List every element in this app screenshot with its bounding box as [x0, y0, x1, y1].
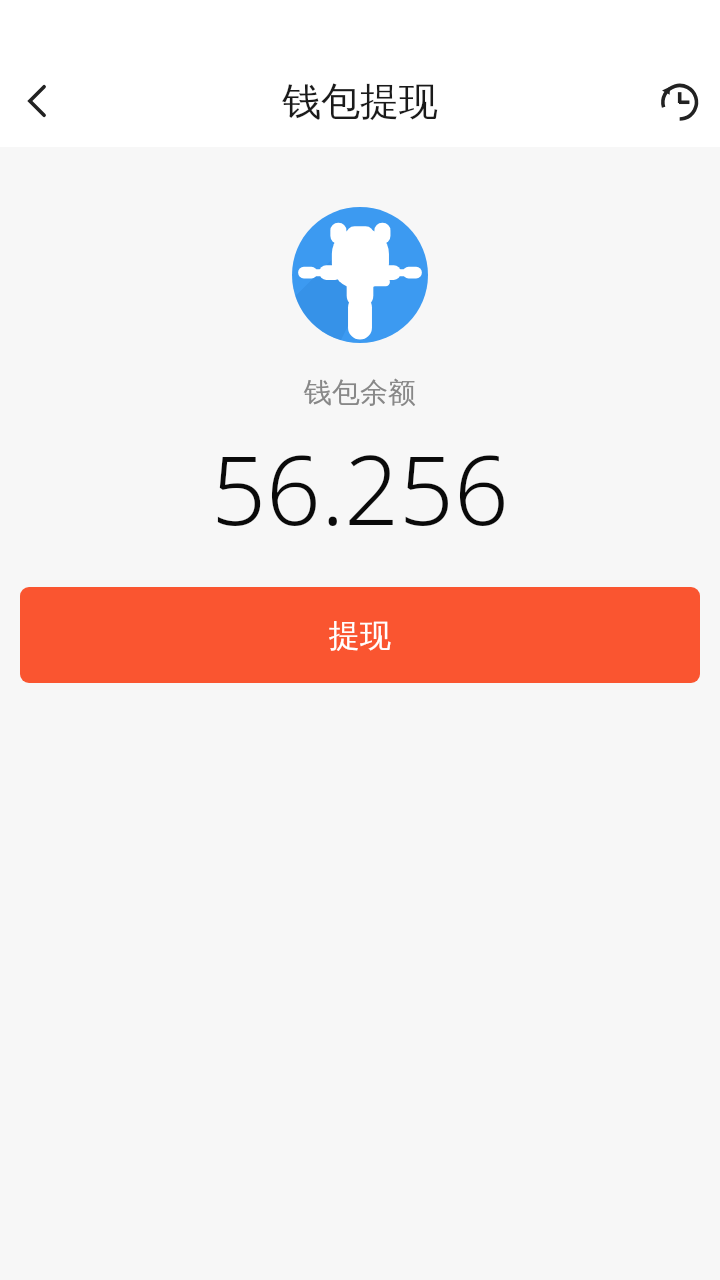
- staticText: 钱包提现: [282, 77, 438, 126]
- staticText: 56.256: [211, 422, 509, 553]
- button[interactable]: History: [636, 59, 720, 143]
- button[interactable]: 提现: [20, 587, 700, 683]
- button[interactable]: Back: [0, 63, 76, 139]
- staticText: 钱包余额: [304, 375, 416, 410]
- staticText: 提现: [329, 616, 391, 655]
